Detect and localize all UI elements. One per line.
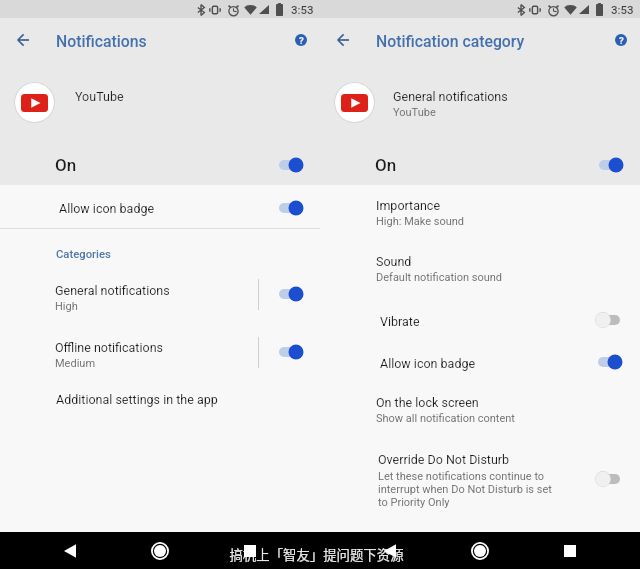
staticText: General notifications <box>393 89 508 104</box>
button[interactable]: Offline notifications <box>272 339 312 365</box>
staticText: On the lock screen <box>376 395 479 410</box>
button[interactable]: Navigate up <box>8 26 37 54</box>
button[interactable]: On <box>592 152 632 178</box>
button[interactable]: Override Do Not Disturb <box>320 451 595 513</box>
button[interactable]: Vibrate <box>589 307 629 333</box>
staticText: 3:53 <box>611 3 634 16</box>
staticText: Allow icon badge <box>59 201 155 216</box>
button[interactable]: Recent apps <box>555 532 585 569</box>
staticText: 3:53 <box>291 3 314 16</box>
button[interactable]: On the lock screen <box>320 394 640 429</box>
staticText: Show all notification content <box>376 412 515 425</box>
button[interactable]: Vibrate <box>320 305 640 335</box>
button[interactable]: Help <box>290 29 312 51</box>
staticText: Medium <box>55 357 96 370</box>
button[interactable]: Allow icon badge <box>0 190 320 225</box>
button[interactable]: Allow icon badge <box>320 347 640 377</box>
button[interactable]: On <box>272 152 312 178</box>
button[interactable]: Back <box>375 532 405 569</box>
staticText: On <box>55 155 77 175</box>
button[interactable]: Back <box>55 532 85 569</box>
button[interactable]: Home <box>145 532 175 569</box>
staticText: High <box>55 300 78 313</box>
button[interactable]: Navigate up <box>328 26 357 54</box>
staticText: High: Make sound <box>376 215 465 228</box>
staticText: YouTube <box>393 106 436 119</box>
staticText: 搞机上「智友」提问题下资源 <box>229 544 404 563</box>
button[interactable]: Recent apps <box>235 532 265 569</box>
button[interactable]: On <box>0 147 320 185</box>
button[interactable]: General notifications <box>0 279 258 319</box>
staticText: Categories <box>56 248 111 261</box>
staticText: Sound <box>376 254 412 269</box>
button[interactable]: Help <box>610 29 632 51</box>
staticText: Let these notifications continue to inte… <box>378 470 552 509</box>
button[interactable]: Additional settings in the app <box>0 385 320 415</box>
button[interactable]: On <box>320 147 640 185</box>
staticText: On <box>375 155 397 175</box>
button[interactable]: Allow icon badge <box>272 195 312 221</box>
staticText: Notification category <box>376 32 525 51</box>
staticText: Allow icon badge <box>380 356 476 371</box>
button[interactable]: Allow icon badge <box>591 349 631 375</box>
button[interactable]: Importance <box>320 197 640 232</box>
staticText: ? <box>619 35 624 46</box>
button[interactable]: General notifications <box>272 281 312 307</box>
staticText: General notifications <box>55 283 170 298</box>
button[interactable]: Override Do Not Disturb <box>589 466 629 492</box>
staticText: Override Do Not Disturb <box>378 452 510 467</box>
staticText: YouTube <box>75 89 124 104</box>
button[interactable]: Sound <box>320 253 640 288</box>
button[interactable]: Home <box>465 532 495 569</box>
button[interactable]: Offline notifications <box>0 336 258 376</box>
staticText: Default notification sound <box>376 271 503 284</box>
staticText: Vibrate <box>380 314 420 329</box>
staticText: ? <box>299 35 304 46</box>
staticText: Offline notifications <box>55 340 163 355</box>
staticText: Additional settings in the app <box>56 392 218 407</box>
staticText: Importance <box>376 198 441 213</box>
staticText: Notifications <box>56 32 147 51</box>
